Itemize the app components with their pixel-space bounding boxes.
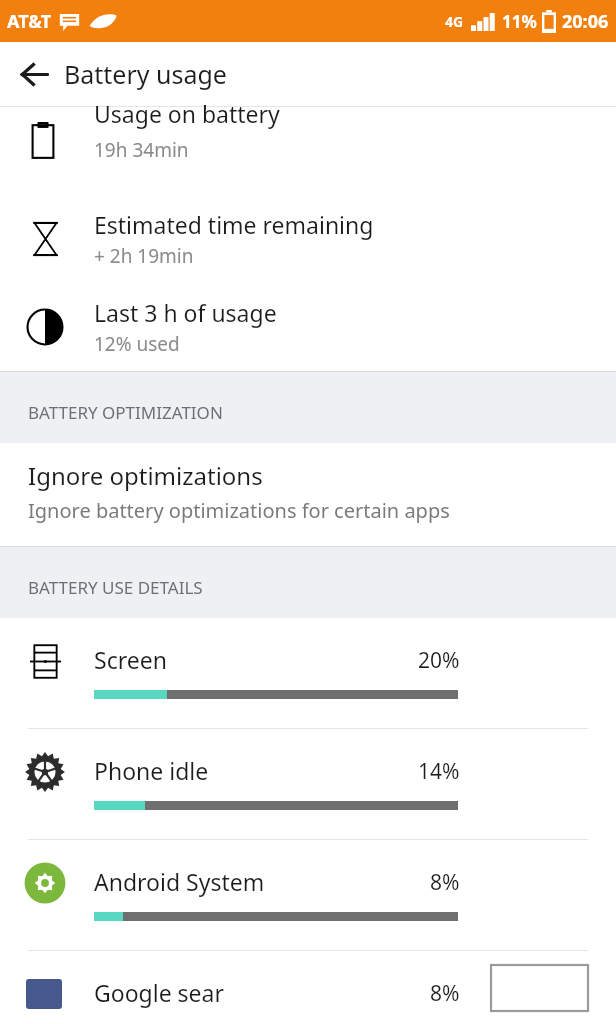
staticText: AT&T [7, 9, 52, 34]
staticText: + 2h 19min [94, 243, 194, 269]
button[interactable]: Google sear [0, 951, 616, 1011]
staticText: 11% [502, 10, 537, 33]
staticText: Screen [94, 644, 167, 675]
staticText: 8% [430, 868, 460, 897]
button[interactable]: Usage on battery [0, 107, 616, 195]
staticText: 14% [418, 757, 460, 786]
staticText: Estimated time remaining [94, 209, 374, 240]
staticText: Google sear [94, 977, 224, 1008]
button[interactable]: Phone idle [0, 729, 616, 839]
staticText: Battery usage [64, 57, 227, 91]
button[interactable]: Last 3 h of usage [0, 283, 616, 371]
staticText: Usage on battery [94, 98, 280, 129]
button[interactable]: Estimated time remaining [0, 195, 616, 283]
staticText: 4G [445, 12, 464, 31]
button[interactable]: Back [10, 50, 58, 98]
staticText: Last 3 h of usage [94, 297, 277, 328]
staticText: 20% [418, 646, 460, 675]
staticText: 19h 34min [94, 137, 189, 163]
staticText: BATTERY OPTIMIZATION [28, 401, 223, 424]
staticText: 8% [430, 979, 460, 1008]
button[interactable]: Ignore optimizations [0, 443, 616, 546]
staticText: BATTERY USE DETAILS [28, 576, 203, 599]
staticText: 20:06 [562, 9, 609, 34]
staticText: Phone idle [94, 755, 209, 786]
staticText: Ignore optimizations [28, 459, 263, 492]
button[interactable]: Android System [0, 840, 616, 950]
staticText: Android System [94, 866, 265, 897]
button[interactable]: Screen [0, 618, 616, 728]
staticText: Ignore battery optimizations for certain… [28, 497, 450, 524]
staticText: 12% used [94, 331, 180, 357]
